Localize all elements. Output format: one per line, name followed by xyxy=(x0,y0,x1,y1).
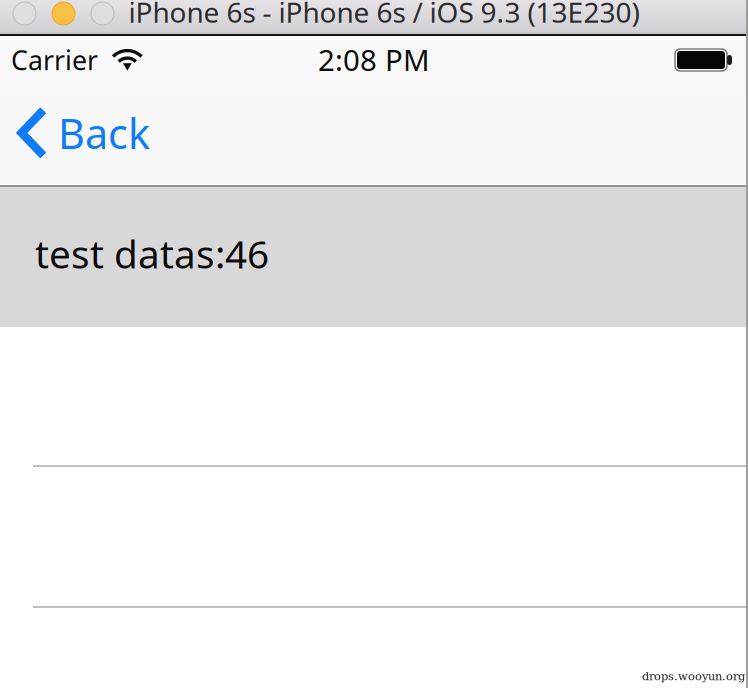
button[interactable]: Back xyxy=(0,97,164,183)
staticText: Back xyxy=(58,106,150,160)
button[interactable]: Zoom xyxy=(91,2,114,25)
staticText: 2:08 PM xyxy=(318,40,430,79)
staticText: test datas:46 xyxy=(35,228,269,279)
staticText: drops.wooyun.org xyxy=(642,670,745,683)
staticText: iPhone 6s - iPhone 6s / iOS 9.3 (13E230) xyxy=(128,0,639,31)
staticText: Carrier xyxy=(11,42,98,78)
button[interactable]: Minimize xyxy=(52,2,75,25)
button[interactable]: Close xyxy=(13,2,36,25)
